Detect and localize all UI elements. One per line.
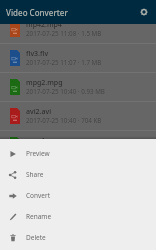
button[interactable]: Preview	[0, 143, 156, 164]
staticText: Rename	[26, 212, 52, 221]
staticText: Preview	[26, 149, 50, 158]
staticText: mpg1.mpg	[26, 136, 63, 146]
staticText: Delete	[26, 233, 46, 242]
staticText: mp42.mp4	[26, 20, 62, 30]
staticText: 2017-07-25 10:40 · 704 KB	[26, 116, 102, 125]
staticText: flv3.flv	[26, 49, 49, 59]
button[interactable]: mpg1.mpg	[0, 131, 156, 160]
staticText: mpg2.mpg	[26, 78, 63, 88]
button[interactable]: Delete	[0, 227, 156, 248]
staticText: 2017-07-25 11:07 · 1.7 MB	[26, 58, 102, 67]
button[interactable]: mpg2.mpg	[0, 73, 156, 102]
staticText: 2017-07-25 11:08 · 1.5 MB	[26, 29, 102, 38]
staticText: Share	[26, 170, 44, 179]
staticText: Convert	[26, 191, 51, 200]
button[interactable]: Rename	[0, 206, 156, 227]
button[interactable]: Settings	[136, 4, 152, 20]
button[interactable]: Convert	[0, 185, 156, 206]
button[interactable]: flv3.flv	[0, 44, 156, 73]
staticText: 2017-07-25 10:39 · 1.1 MB	[26, 145, 102, 154]
staticText: 2017-07-25 10:40 · 0.93 MB	[26, 87, 105, 96]
button[interactable]: avi2.avi	[0, 102, 156, 131]
staticText: avi2.avi	[26, 107, 52, 117]
staticText: Video Converter	[6, 7, 68, 18]
button[interactable]: mp42.mp4	[0, 15, 156, 44]
button[interactable]: Share	[0, 164, 156, 185]
